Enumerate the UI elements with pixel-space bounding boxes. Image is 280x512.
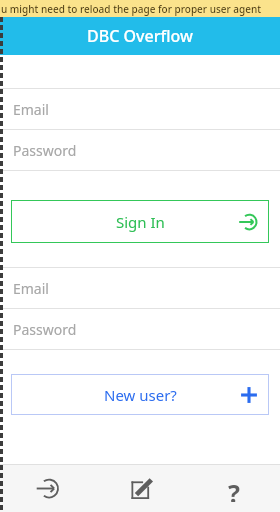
button[interactable]: Password [0,309,280,349]
staticText: Sign In [116,212,165,232]
button[interactable]: Sign In [11,200,269,243]
button[interactable]: Password [0,130,280,170]
staticText: Email [13,279,49,298]
button[interactable]: Email [0,89,280,129]
button[interactable]: Compose post [94,465,187,512]
button[interactable]: Help [187,465,280,512]
staticText: ? [228,476,240,502]
staticText: u might need to reload the page for prop… [1,2,262,16]
button[interactable]: Sign in [0,465,94,512]
staticText: DBC Overflow [87,25,193,47]
staticText: New user? [104,385,177,405]
staticText: Password [13,141,77,160]
staticText: Password [13,320,77,339]
staticText: Email [13,100,49,119]
button[interactable]: Email [0,268,280,308]
button[interactable]: New user? [11,374,269,415]
